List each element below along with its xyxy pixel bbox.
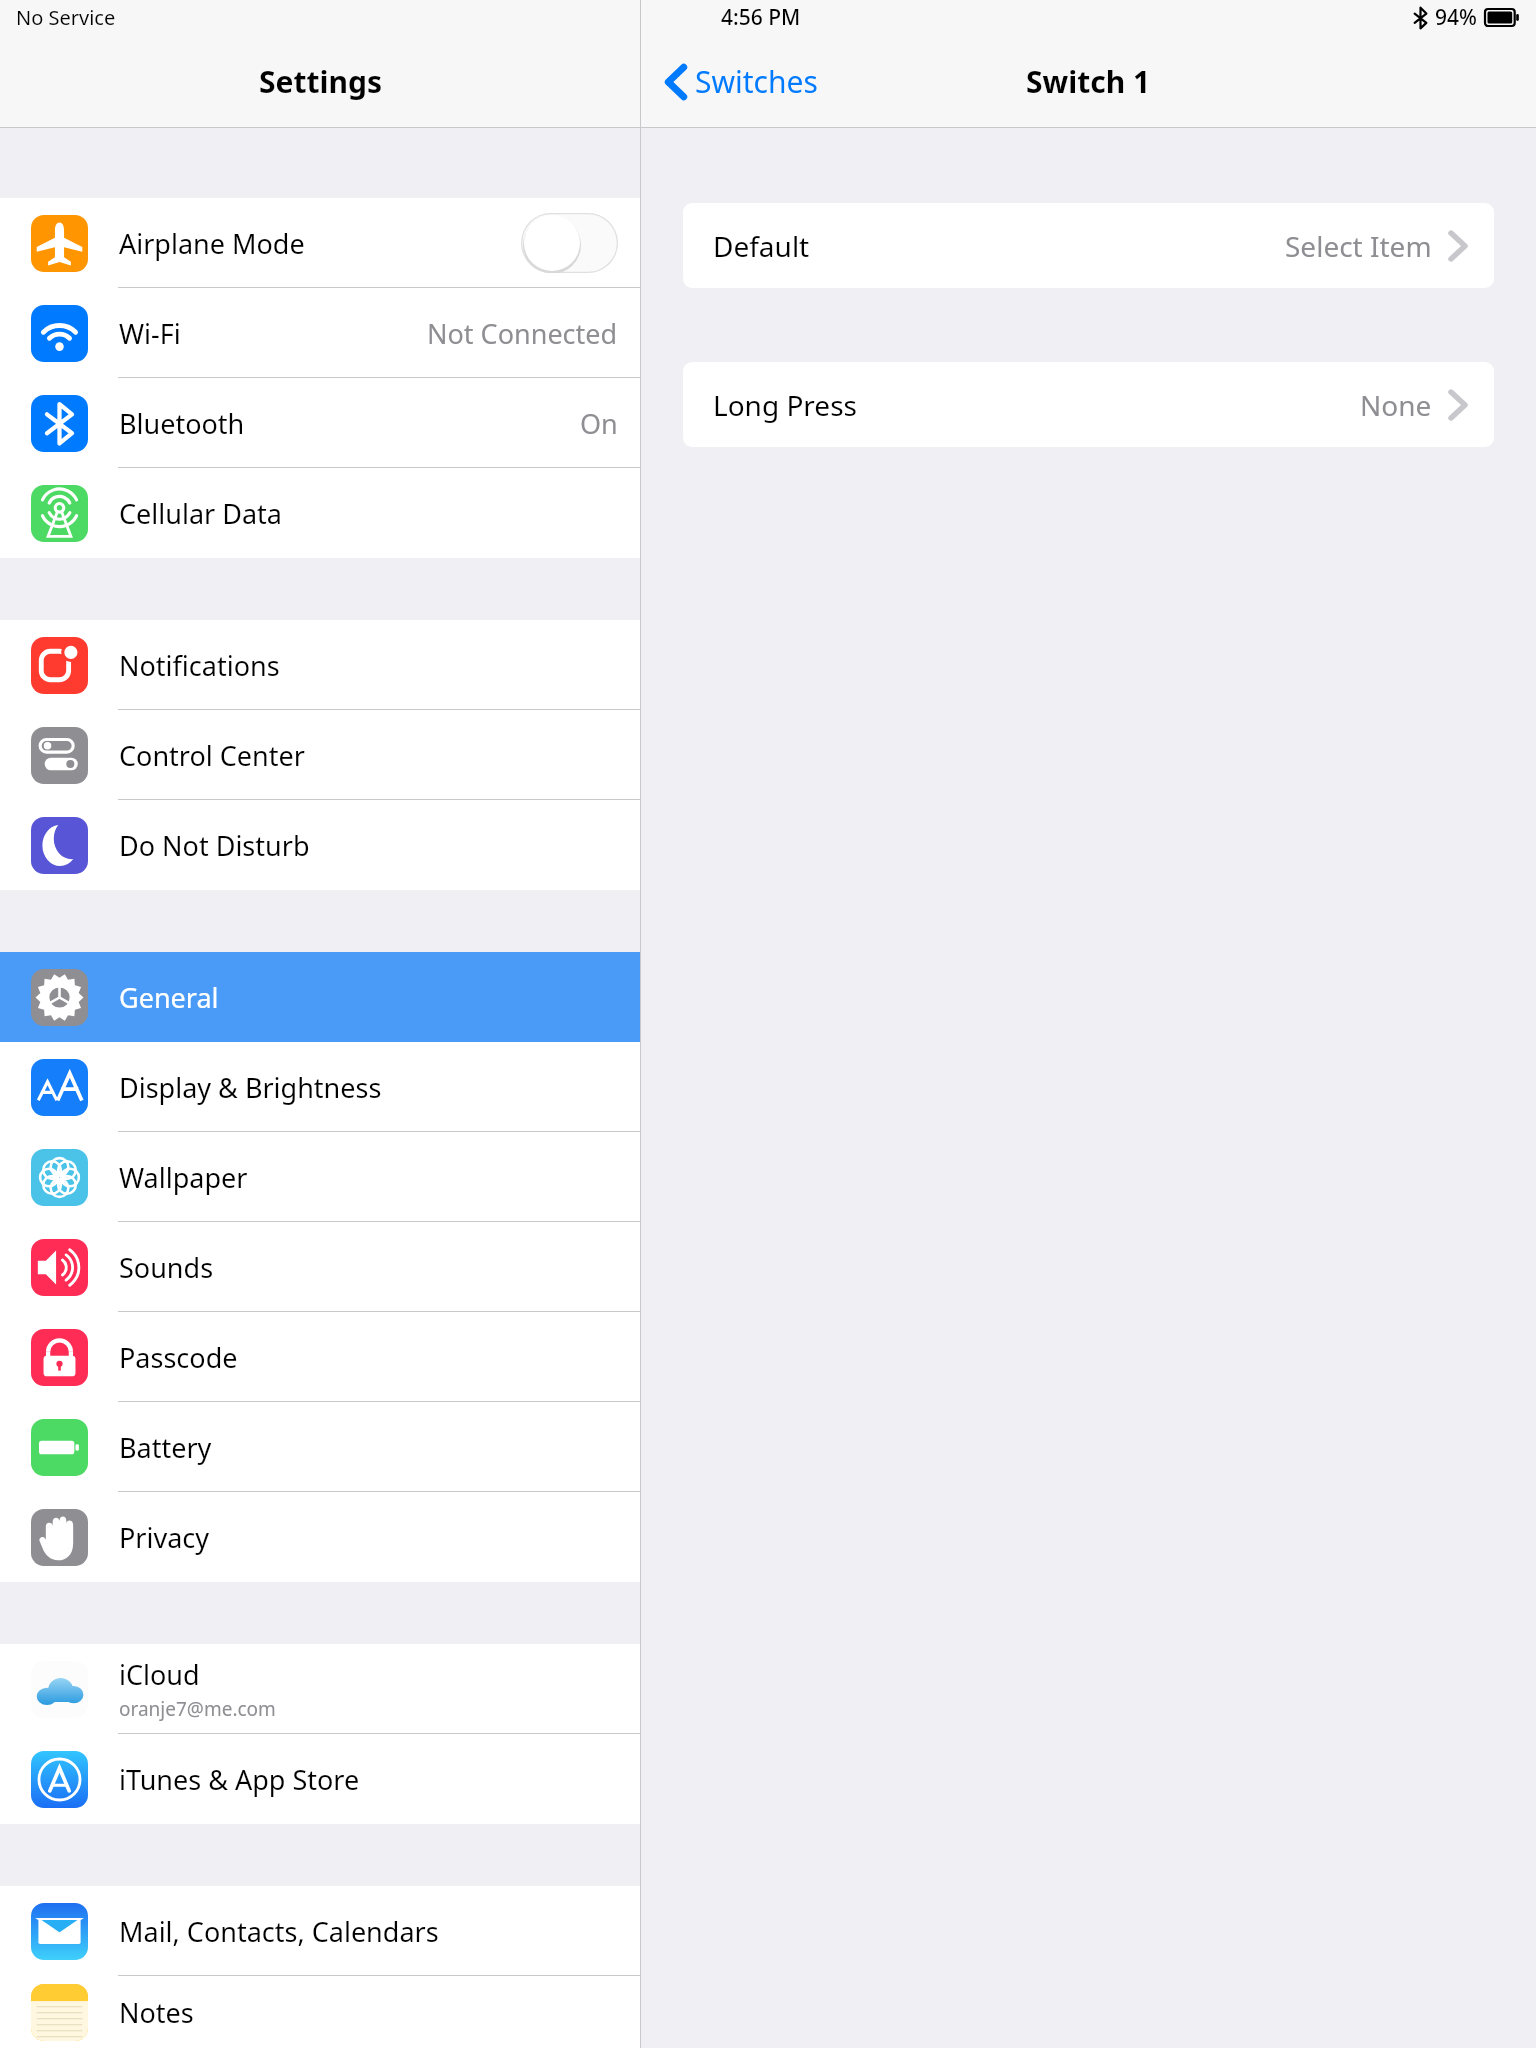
button[interactable]: Airplane Mode toggle	[521, 213, 618, 273]
staticText: iTunes & App Store	[119, 1761, 360, 1798]
staticText: Not Connected	[427, 315, 618, 352]
staticText: Privacy	[119, 1519, 210, 1556]
button[interactable]: Long Press	[683, 362, 1494, 447]
staticText: None	[1360, 386, 1432, 424]
staticText: Display & Brightness	[119, 1069, 382, 1106]
staticText: Airplane Mode	[119, 225, 305, 262]
staticText: Settings	[259, 61, 382, 102]
staticText: Control Center	[119, 737, 305, 774]
staticText: Bluetooth	[119, 405, 245, 442]
staticText: Long Press	[713, 386, 857, 424]
button[interactable]: iCloud	[0, 1644, 640, 1734]
staticText: Sounds	[119, 1249, 214, 1286]
button[interactable]: Back to Switches	[665, 61, 818, 102]
staticText: Switch 1	[1026, 61, 1151, 102]
button[interactable]: Privacy	[0, 1492, 640, 1582]
button[interactable]: General	[0, 952, 640, 1042]
staticText: Default	[713, 227, 810, 265]
staticText: Cellular Data	[119, 495, 282, 532]
button[interactable]: Control Center	[0, 710, 640, 800]
staticText: Passcode	[119, 1339, 238, 1376]
button[interactable]: Battery	[0, 1402, 640, 1492]
staticText: Notifications	[119, 647, 280, 684]
staticText: No Service	[16, 4, 116, 31]
button[interactable]: Sounds	[0, 1222, 640, 1312]
staticText: Battery	[119, 1429, 212, 1466]
button[interactable]: Notes	[0, 1976, 640, 2048]
button[interactable]: Wi-Fi	[0, 288, 640, 378]
button[interactable]: Airplane Mode	[0, 198, 640, 288]
button[interactable]: Wallpaper	[0, 1132, 640, 1222]
button[interactable]: Display & Brightness	[0, 1042, 640, 1132]
button[interactable]: Do Not Disturb	[0, 800, 640, 890]
staticText: Wallpaper	[119, 1159, 248, 1196]
staticText: 4:56 PM	[721, 3, 801, 32]
staticText: 94%	[1435, 3, 1477, 32]
button[interactable]: Mail, Contacts, Calendars	[0, 1886, 640, 1976]
staticText: Switches	[695, 61, 818, 102]
staticText: General	[119, 979, 219, 1016]
button[interactable]: Passcode	[0, 1312, 640, 1402]
button[interactable]: iTunes & App Store	[0, 1734, 640, 1824]
staticText: On	[580, 405, 618, 442]
staticText: iCloud	[119, 1656, 200, 1693]
button[interactable]: Bluetooth	[0, 378, 640, 468]
staticText: Notes	[119, 1994, 194, 2031]
button[interactable]: Notifications	[0, 620, 640, 710]
staticText: oranje7@me.com	[119, 1696, 276, 1722]
staticText: Do Not Disturb	[119, 827, 310, 864]
staticText: Mail, Contacts, Calendars	[119, 1913, 439, 1950]
staticText: Wi-Fi	[119, 315, 181, 352]
button[interactable]: Cellular Data	[0, 468, 640, 558]
staticText: Select Item	[1285, 227, 1432, 265]
button[interactable]: Default	[683, 203, 1494, 288]
